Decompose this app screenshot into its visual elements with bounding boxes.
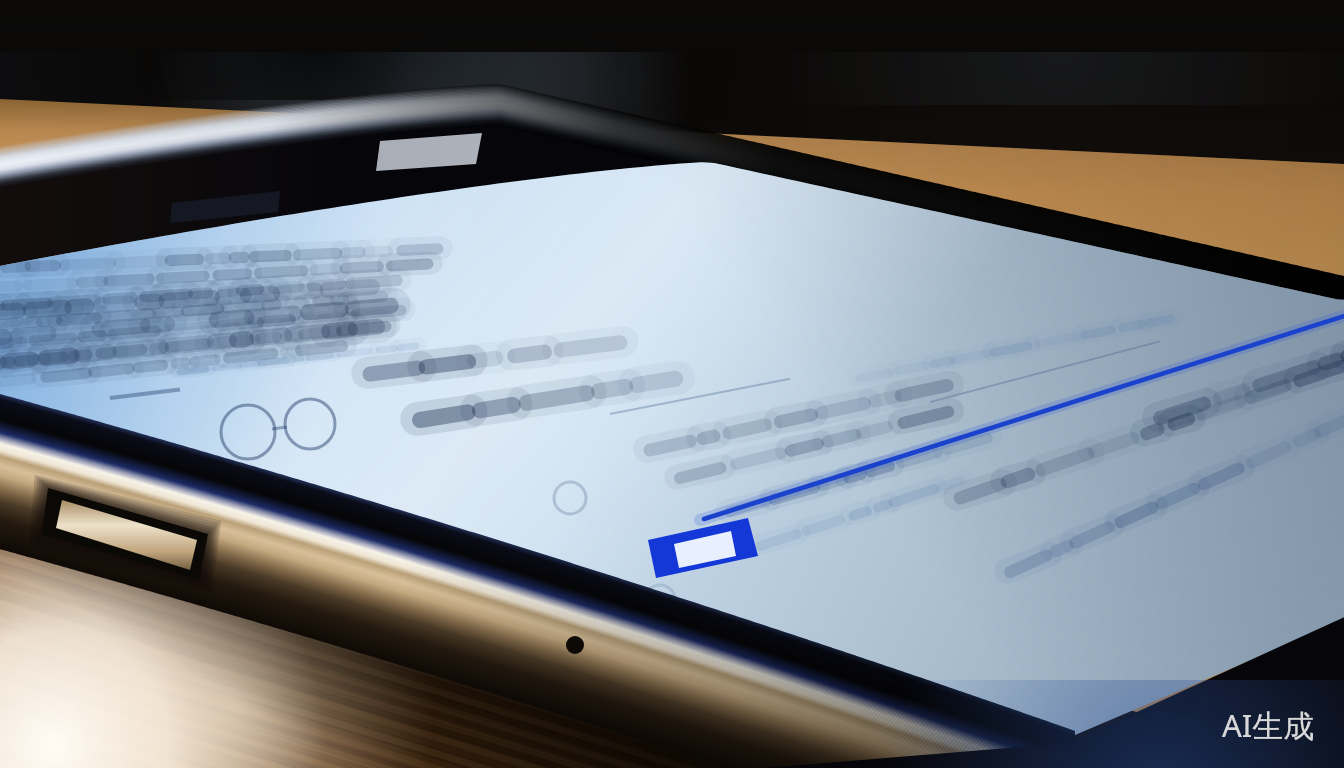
- button[interactable]: Phone on a wooden desk: [0, 0, 1344, 768]
- staticText: AI生成: [1222, 704, 1315, 746]
